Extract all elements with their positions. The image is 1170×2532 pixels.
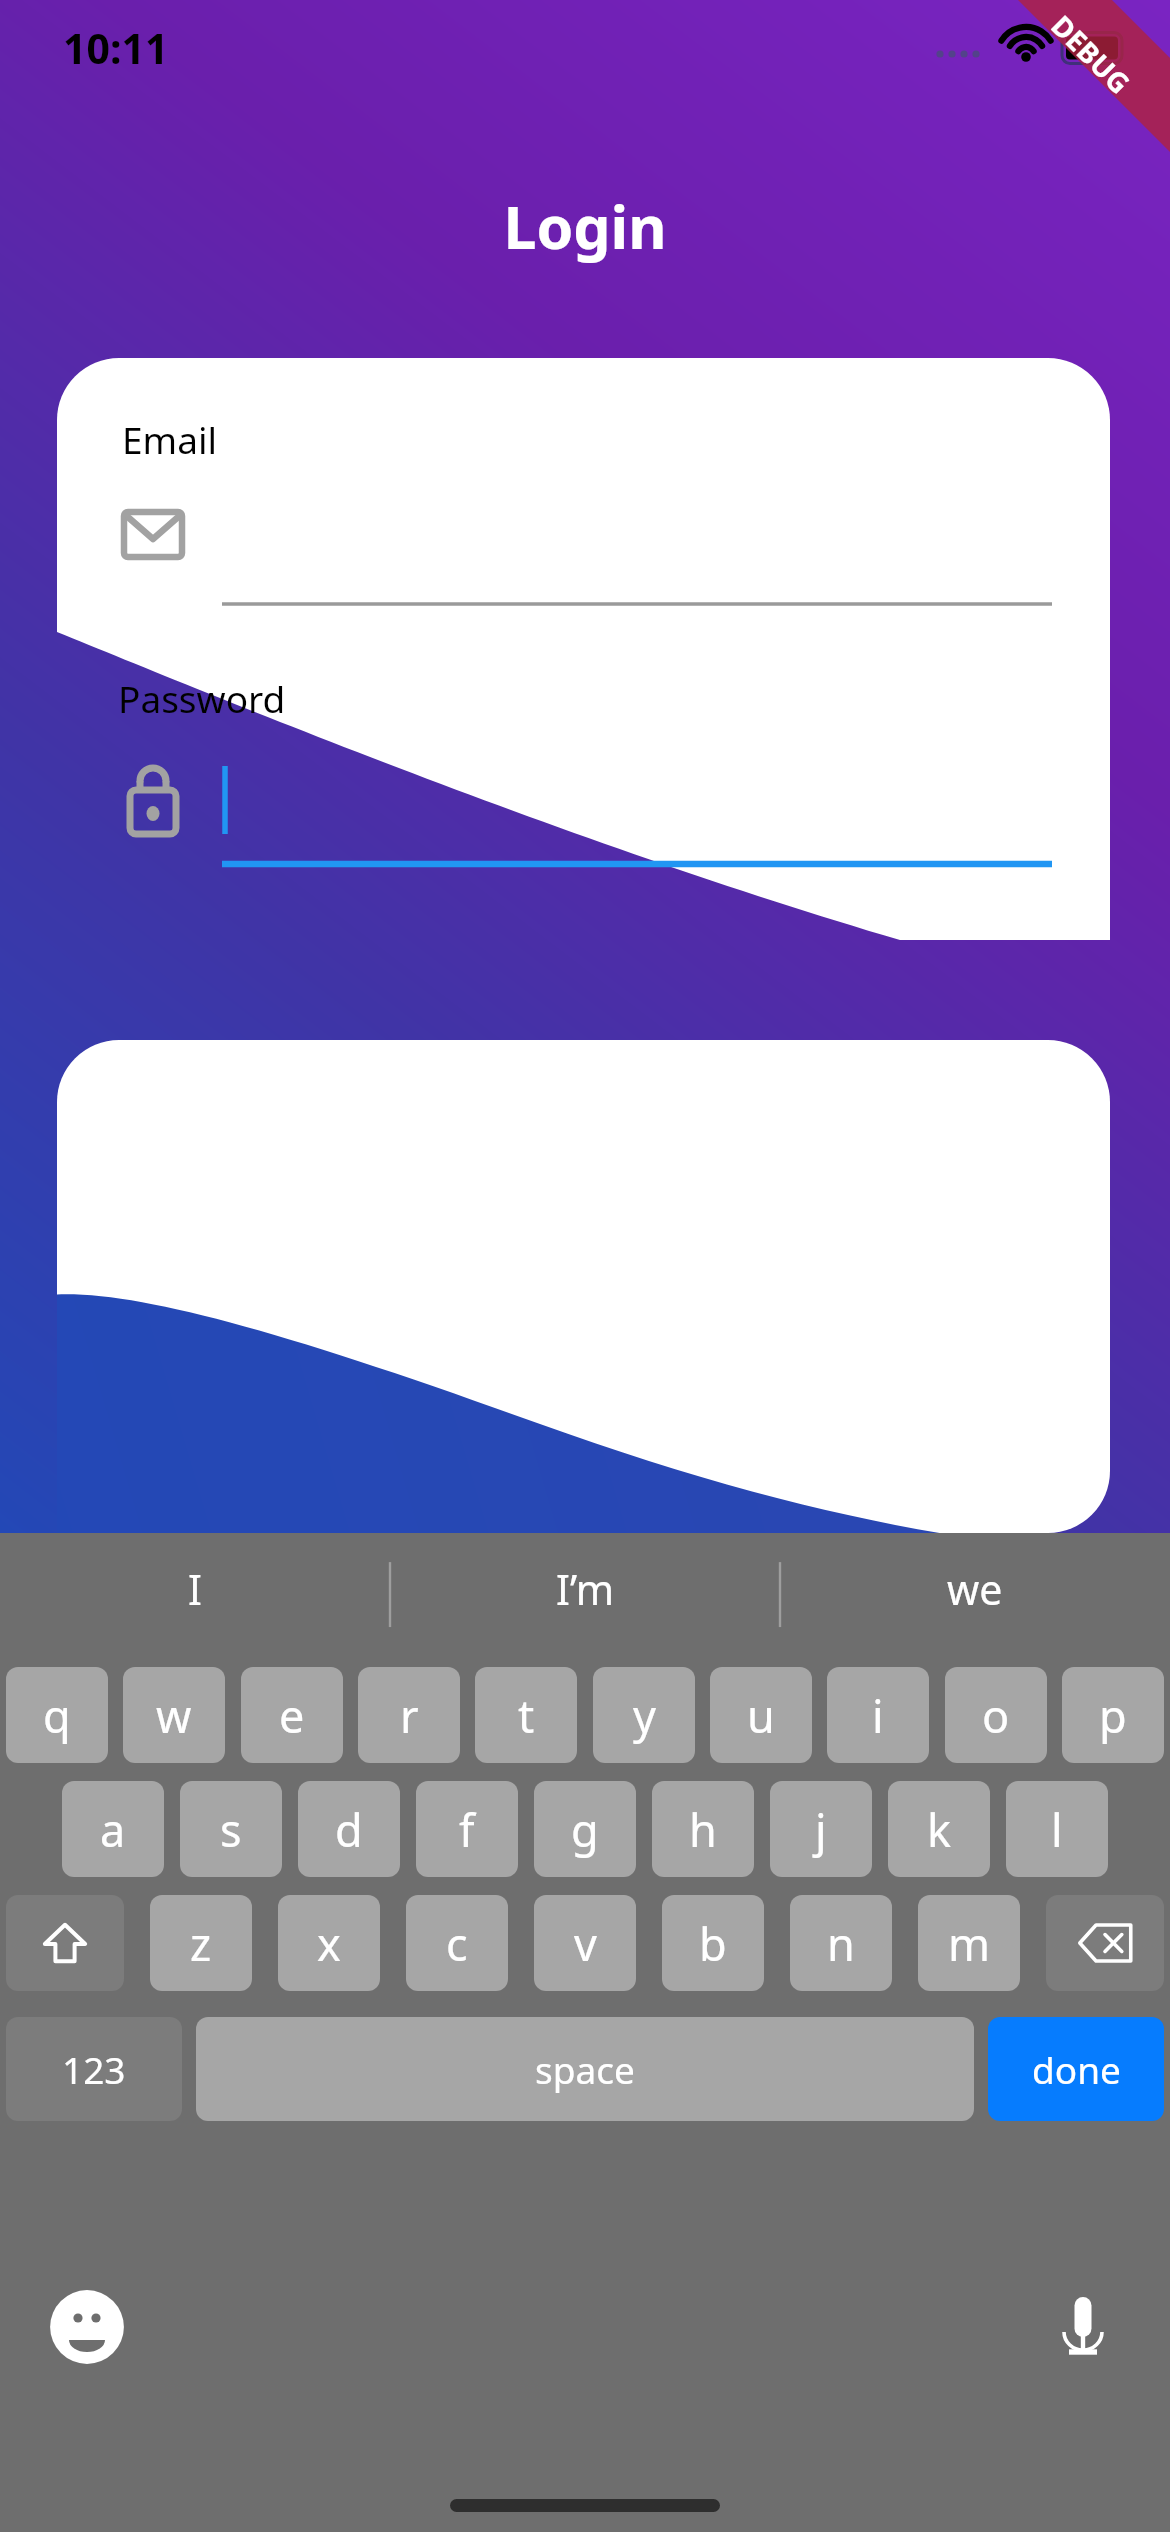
staticText: c (446, 1913, 468, 1974)
staticText: g (571, 1799, 599, 1860)
button[interactable]: I’m (390, 1533, 780, 1645)
button[interactable]: m (918, 1895, 1020, 1991)
button[interactable]: Backspace (1046, 1895, 1164, 1991)
button[interactable]: u (710, 1667, 812, 1763)
staticText: DEBUG (1044, 7, 1139, 102)
staticText: w (156, 1685, 192, 1746)
button[interactable]: h (652, 1781, 754, 1877)
button[interactable]: Password field (100, 730, 1170, 2532)
staticText: j (815, 1799, 827, 1860)
button[interactable]: o (945, 1667, 1047, 1763)
button[interactable]: p (1062, 1667, 1164, 1763)
button[interactable]: I (0, 1533, 390, 1645)
button[interactable]: x (278, 1895, 380, 1991)
button[interactable]: Emoji keyboard (46, 2286, 128, 2368)
button[interactable]: Voice input (1042, 2286, 1124, 2368)
button[interactable]: l (1006, 1781, 1108, 1877)
staticText: p (1099, 1685, 1127, 1746)
button[interactable]: f (416, 1781, 518, 1877)
staticText: Email (122, 414, 218, 464)
button[interactable]: k (888, 1781, 990, 1877)
button[interactable]: w (123, 1667, 225, 1763)
staticText: done (1032, 2044, 1121, 2094)
button[interactable]: j (770, 1781, 872, 1877)
staticText: d (335, 1799, 363, 1860)
staticText: f (459, 1799, 475, 1860)
button[interactable]: 123 (6, 2017, 182, 2121)
button[interactable]: n (790, 1895, 892, 1991)
staticText: v (574, 1913, 597, 1974)
button[interactable]: a (62, 1781, 164, 1877)
staticText: a (100, 1799, 126, 1860)
staticText: 123 (62, 2044, 126, 2094)
staticText: s (220, 1799, 242, 1860)
staticText: Login (0, 186, 1170, 266)
button[interactable]: c (406, 1895, 508, 1991)
button[interactable]: g (534, 1781, 636, 1877)
staticText: o (982, 1685, 1010, 1746)
button[interactable]: e (241, 1667, 343, 1763)
staticText: e (279, 1685, 305, 1746)
staticText: r (400, 1685, 419, 1746)
button[interactable]: space (196, 2017, 974, 2121)
button[interactable]: s (180, 1781, 282, 1877)
button[interactable]: d (298, 1781, 400, 1877)
staticText: I’m (556, 1561, 615, 1617)
button[interactable]: we (780, 1533, 1170, 1645)
staticText: y (633, 1685, 656, 1746)
staticText: z (190, 1913, 212, 1974)
staticText: l (1051, 1799, 1063, 1860)
staticText: t (518, 1685, 535, 1746)
staticText: we (947, 1561, 1003, 1617)
staticText: Password (118, 673, 286, 723)
button[interactable]: r (358, 1667, 460, 1763)
staticText: h (689, 1799, 717, 1860)
button[interactable]: v (534, 1895, 636, 1991)
staticText: q (43, 1685, 71, 1746)
button[interactable]: t (475, 1667, 577, 1763)
staticText: m (948, 1913, 991, 1974)
staticText: I (188, 1561, 202, 1617)
staticText: b (699, 1913, 727, 1974)
button[interactable]: i (827, 1667, 929, 1763)
staticText: n (827, 1913, 855, 1974)
button[interactable]: Email field (100, 470, 1170, 2532)
staticText: i (872, 1685, 884, 1746)
button[interactable]: z (150, 1895, 252, 1991)
button[interactable]: y (593, 1667, 695, 1763)
staticText: u (747, 1685, 775, 1746)
staticText: space (535, 2044, 635, 2094)
button[interactable]: done (988, 2017, 1164, 2121)
staticText: 10:11 (63, 20, 169, 76)
staticText: k (927, 1799, 952, 1860)
button[interactable]: b (662, 1895, 764, 1991)
button[interactable]: Shift (6, 1895, 124, 1991)
staticText: x (317, 1913, 341, 1974)
button[interactable]: q (6, 1667, 108, 1763)
